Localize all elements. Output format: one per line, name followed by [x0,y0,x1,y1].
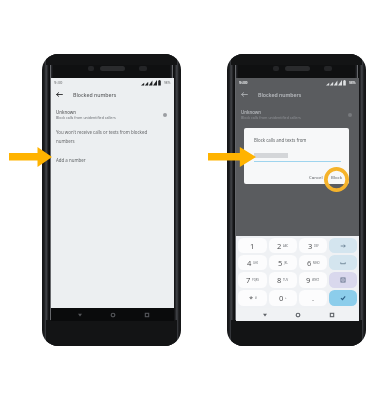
button[interactable]: . [299,290,327,306]
staticText: Block calls from unidentified callers [56,115,116,120]
staticText: Blocked numbers [258,91,302,98]
staticText: JKL [284,261,288,265]
button[interactable]: Block [327,172,347,182]
staticText: Cancel [309,174,323,180]
button[interactable]: 4 [238,255,267,270]
staticText: TUV [283,278,289,282]
button[interactable]: Toggle unknown [160,110,169,119]
staticText: 8 [277,275,282,285]
button[interactable]: 3 [299,238,327,253]
staticText: 6 [307,258,312,268]
button[interactable]: Add a number [51,154,174,166]
button[interactable]: 2 [269,238,297,253]
button[interactable]: * [238,290,267,306]
staticText: 9:30 [239,80,248,86]
staticText: 5 [278,258,283,268]
button[interactable]: Tab [329,238,357,253]
button[interactable]: Back [74,309,85,320]
button[interactable]: Recent apps [326,309,337,320]
staticText: Block calls from unidentified callers [241,115,301,120]
button[interactable]: Space [329,255,357,270]
button[interactable]: 5 [269,255,297,270]
button[interactable]: 0 [269,290,297,306]
staticText: Block calls and texts from [254,137,307,143]
staticText: PQRS [252,278,259,282]
button[interactable]: Home [292,309,303,320]
button[interactable]: Navigate up [51,87,67,101]
staticText: Unknown [56,109,77,115]
button[interactable]: Navigate up [236,87,252,101]
staticText: * [249,293,254,303]
button[interactable]: Unknown [236,107,359,121]
button[interactable]: Enter [329,290,357,306]
button[interactable]: Back [259,309,270,320]
button[interactable]: 8 [269,272,297,288]
staticText: MNO [313,261,320,265]
staticText: ABC [283,244,289,248]
staticText: 7 [246,275,251,285]
button[interactable]: Toggle unknown [345,110,354,119]
button[interactable]: Emoji [329,272,357,288]
staticText: GHI [253,261,258,265]
button[interactable]: 1 [238,238,267,253]
button[interactable]: Unknown [51,107,174,121]
button[interactable]: 9 [299,272,327,288]
staticText: WXYZ [312,278,320,282]
staticText: 98% [349,81,356,85]
staticText: . [312,293,315,303]
button[interactable]: Recent apps [141,309,152,320]
staticText: Unknown [241,109,262,115]
staticText: 98% [164,81,171,85]
staticText: 4 [247,258,252,268]
button[interactable]: Cancel [305,172,327,182]
staticText: DEF [314,244,319,248]
staticText: 1 [250,241,255,251]
staticText: 0 [279,293,284,303]
staticText: Block [331,174,343,180]
button[interactable]: 7 [238,272,267,288]
button[interactable]: 6 [299,255,327,270]
staticText: + [285,296,287,300]
staticText: 9:30 [54,80,63,86]
staticText: Blocked numbers [73,91,117,98]
staticText: You won't receive calls or texts from bl… [56,129,148,144]
staticText: 2 [277,241,282,251]
staticText: 9 [306,275,311,285]
staticText: # [255,296,257,300]
staticText: 3 [308,241,313,251]
staticText: Add a number [56,157,86,163]
button[interactable]: Home [107,309,118,320]
